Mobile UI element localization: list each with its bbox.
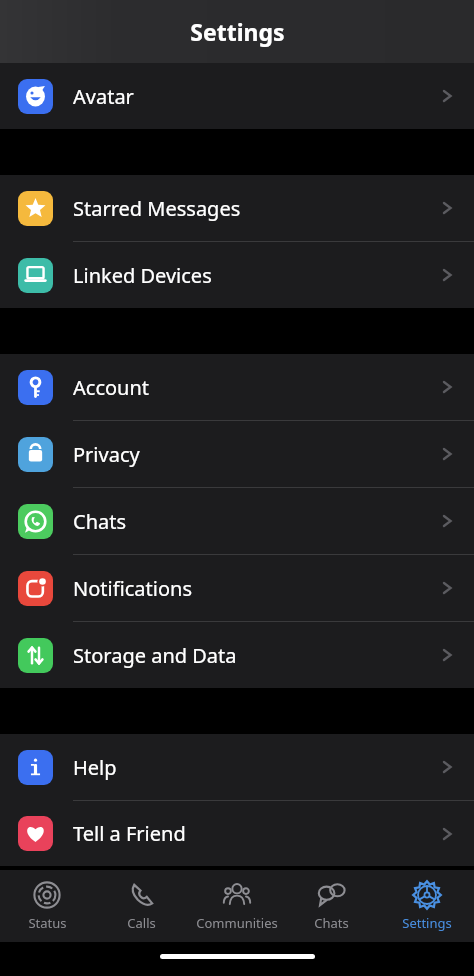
button[interactable]: Privacy xyxy=(0,421,474,488)
staticText: Avatar xyxy=(73,83,134,110)
staticText: Calls xyxy=(127,914,156,932)
button[interactable]: Help xyxy=(0,734,474,801)
staticText: Chats xyxy=(314,914,349,932)
staticText: Communities xyxy=(196,914,278,932)
button[interactable]: Status xyxy=(0,870,94,942)
button[interactable]: Communities xyxy=(189,870,284,942)
staticText: Settings xyxy=(190,16,285,47)
staticText: Linked Devices xyxy=(73,262,212,289)
staticText: Starred Messages xyxy=(73,195,241,222)
staticText: Status xyxy=(28,914,67,932)
button[interactable]: Settings xyxy=(379,870,474,942)
staticText: Tell a Friend xyxy=(73,820,186,847)
button[interactable]: Storage and Data xyxy=(0,622,474,688)
button[interactable]: Linked Devices xyxy=(0,242,474,308)
button[interactable]: Chats xyxy=(284,870,379,942)
staticText: Storage and Data xyxy=(73,642,237,669)
button[interactable]: Tell a Friend xyxy=(0,801,474,866)
button[interactable]: Avatar xyxy=(0,63,474,129)
staticText: Notifications xyxy=(73,575,192,602)
button[interactable]: Calls xyxy=(94,870,189,942)
staticText: Help xyxy=(73,754,117,781)
staticText: Privacy xyxy=(73,441,140,468)
button[interactable]: Chats xyxy=(0,488,474,555)
button[interactable]: Account xyxy=(0,354,474,421)
button[interactable]: Starred Messages xyxy=(0,175,474,242)
staticText: Chats xyxy=(73,508,127,535)
button[interactable]: Notifications xyxy=(0,555,474,622)
staticText: Settings xyxy=(402,914,452,932)
staticText: Account xyxy=(73,374,150,401)
